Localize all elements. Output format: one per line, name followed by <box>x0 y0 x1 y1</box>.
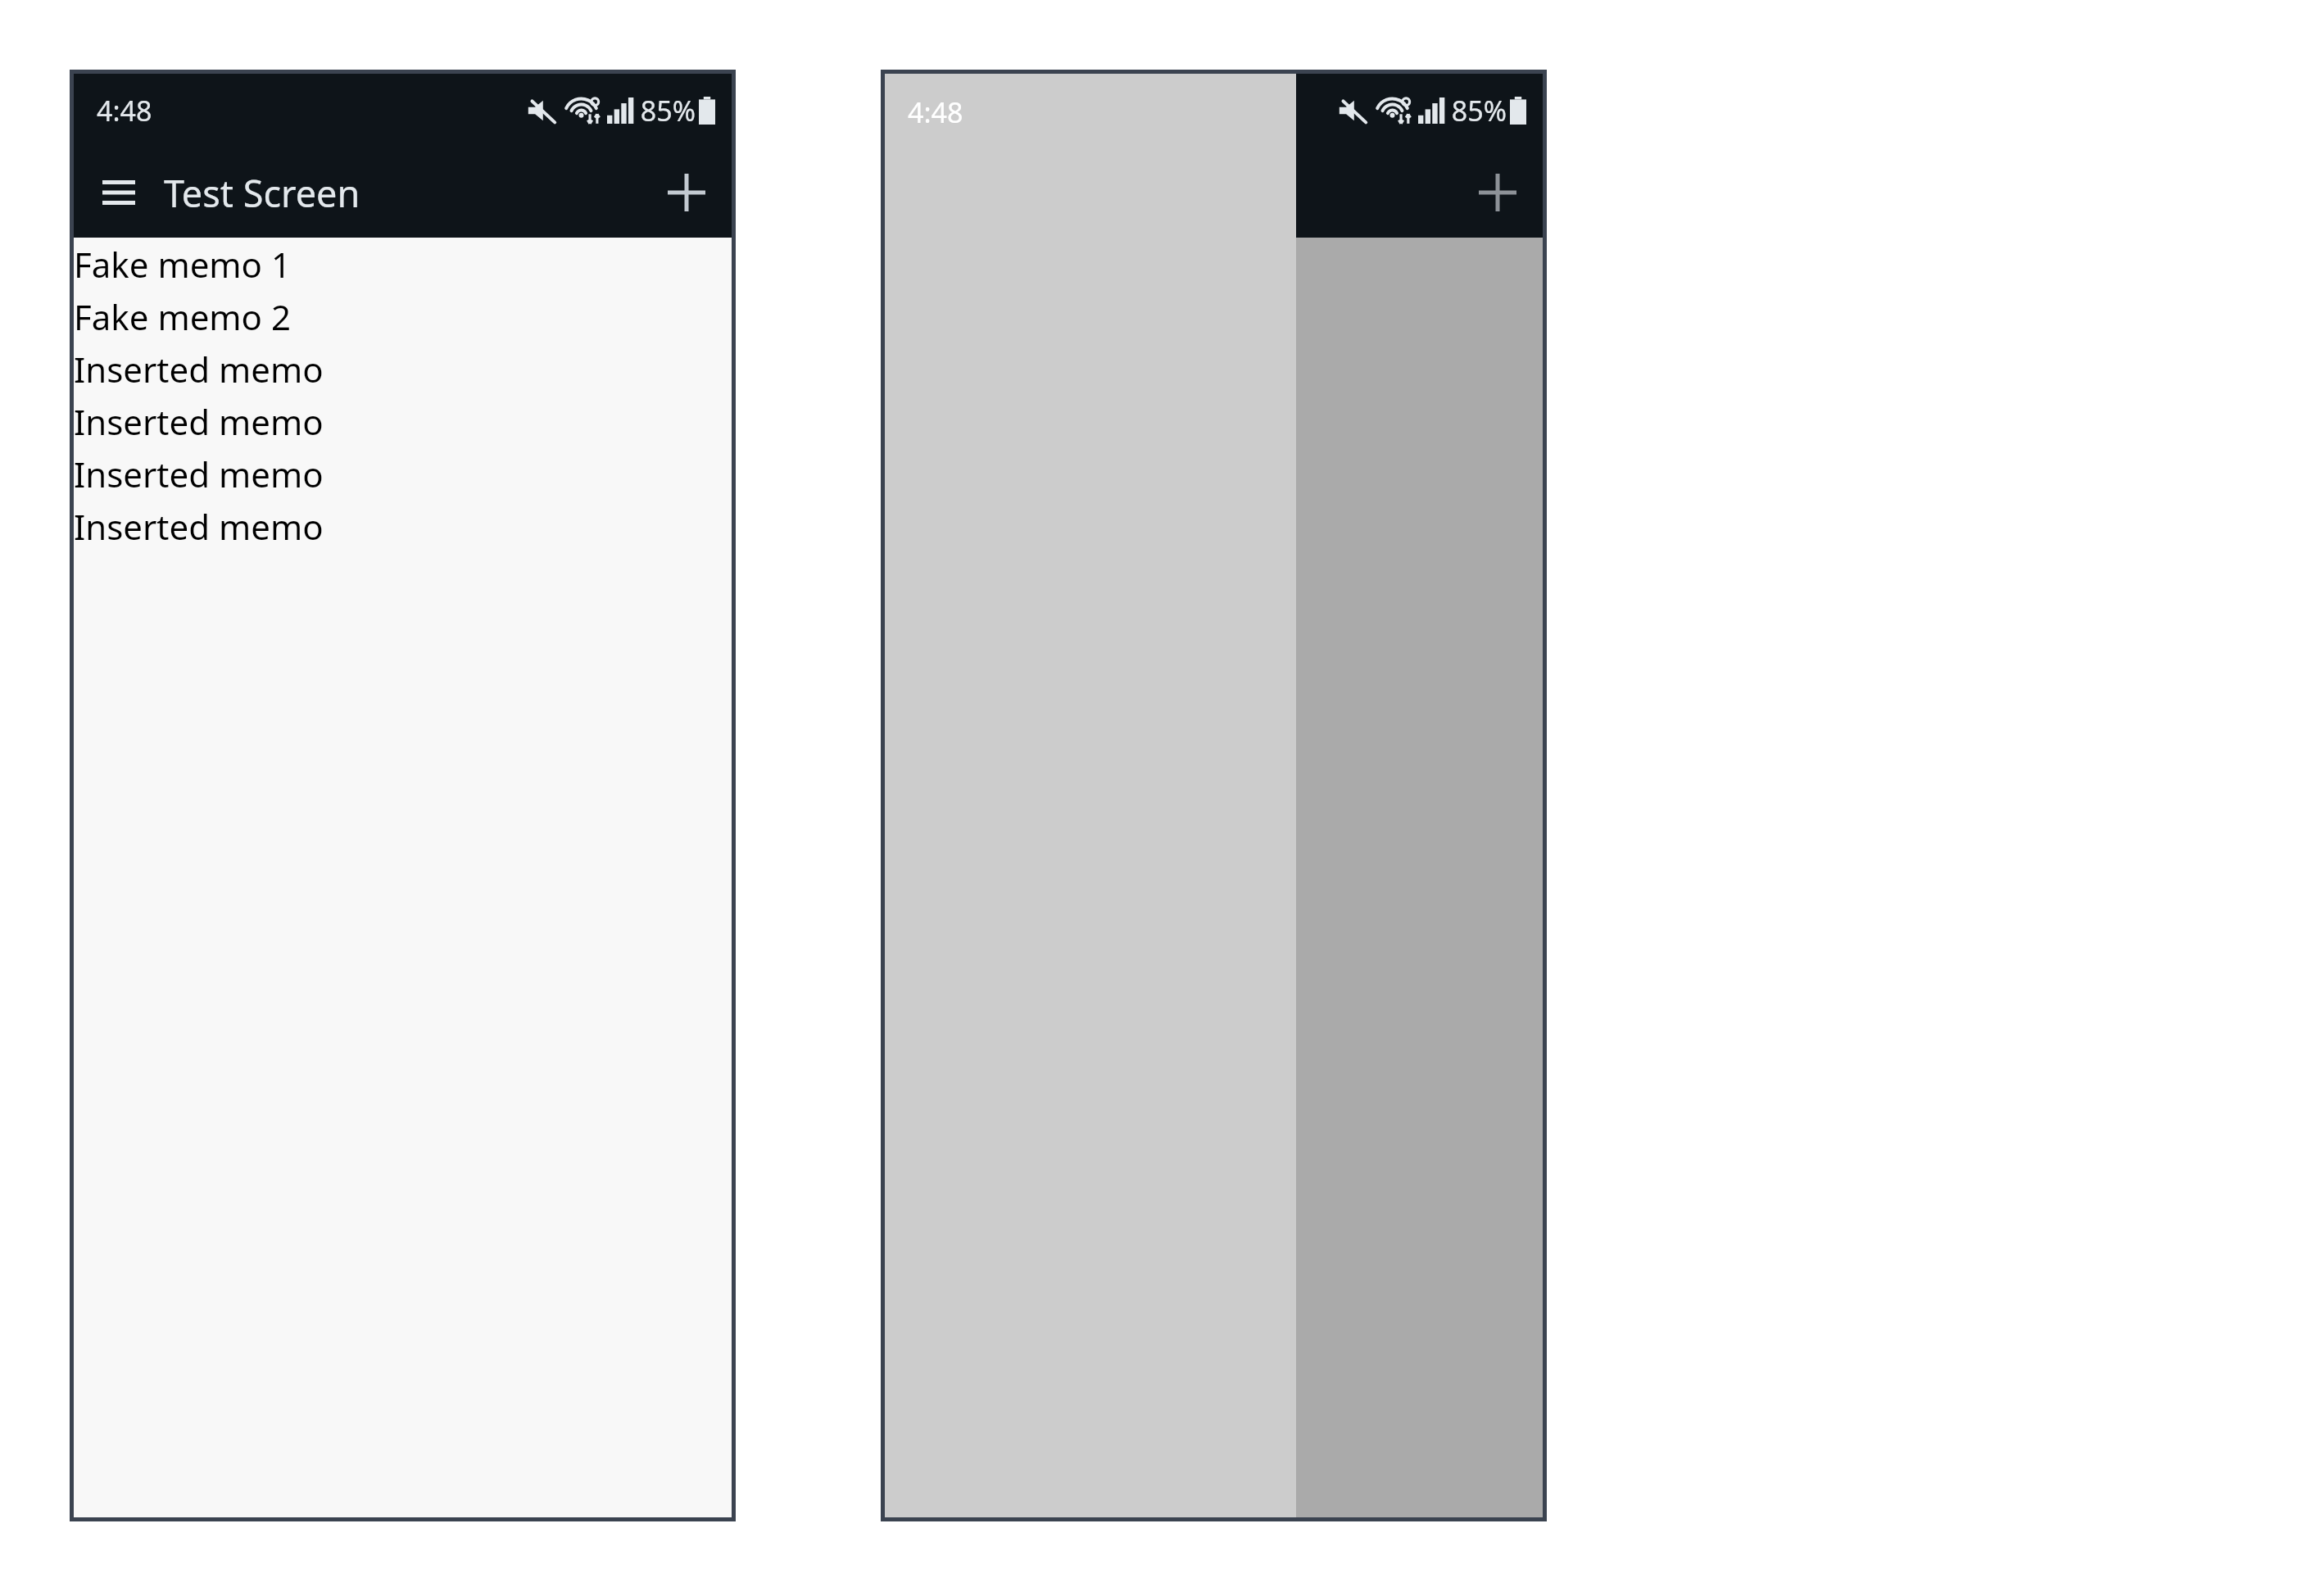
button[interactable]: Fake memo 2 <box>74 290 732 342</box>
button[interactable]: Add memo <box>641 147 732 238</box>
button[interactable]: Fake memo 1 <box>74 238 732 290</box>
staticText: Test Screen <box>164 168 360 218</box>
staticText: 85% <box>640 92 696 129</box>
staticText: 4:48 <box>97 92 152 129</box>
staticText: Fake memo 2 <box>74 293 291 340</box>
staticText: 4:48 <box>908 93 963 131</box>
button[interactable]: Add memo <box>1453 147 1543 238</box>
button[interactable]: Inserted memo <box>74 500 732 552</box>
staticText: 85% <box>1451 92 1507 129</box>
staticText: Inserted memo <box>74 346 324 392</box>
staticText: Inserted memo <box>74 398 324 445</box>
button[interactable]: Inserted memo <box>74 342 732 395</box>
button[interactable]: Open navigation drawer <box>74 147 164 238</box>
button[interactable]: Inserted memo <box>74 395 732 447</box>
staticText: Inserted memo <box>74 503 324 550</box>
staticText: Fake memo 1 <box>74 241 291 288</box>
button[interactable]: Inserted memo <box>74 447 732 500</box>
staticText: Inserted memo <box>74 451 324 497</box>
